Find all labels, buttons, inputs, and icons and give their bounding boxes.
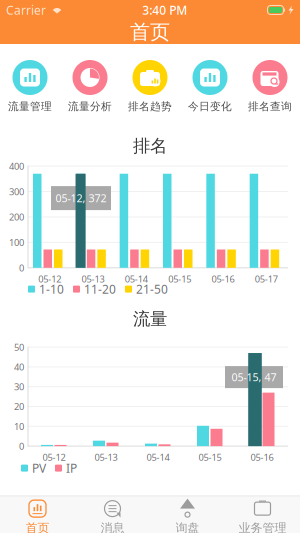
staticText: 今日变化 [188,100,232,113]
staticText: 20 [14,400,24,413]
staticText: 11-20 [84,281,116,297]
staticText: 05-14 [125,273,148,285]
staticText: IP [66,460,77,476]
staticText: 排名 [133,135,167,157]
staticText: 300 [9,185,24,198]
staticText: 排名查询 [248,100,292,113]
button[interactable]: 今日变化 [180,60,240,113]
staticText: 流量 [133,308,167,330]
staticText: 40 [14,361,24,373]
staticText: PV [32,460,46,476]
staticText: 0 [19,440,24,452]
staticText: 排名趋势 [128,100,172,113]
staticText: 首页 [130,20,170,44]
staticText: 400 [9,160,24,172]
staticText: 0 [19,262,24,274]
button[interactable]: 询盘 [150,499,225,533]
staticText: 05-13 [81,273,104,285]
staticText: 200 [9,211,24,223]
button[interactable]: 流量分析 [60,60,120,113]
staticText: 05-15, 47 [231,370,276,384]
button[interactable]: 消息 [75,499,150,533]
staticText: 10 [14,420,24,432]
staticText: 05-12, 372 [55,191,106,205]
button[interactable]: 流量管理 [0,60,60,113]
staticText: 30 [14,380,24,393]
staticText: 05-12 [38,273,61,285]
button[interactable]: 首页 [0,499,75,533]
staticText: 1-10 [39,281,64,297]
button[interactable]: 排名查询 [240,60,300,113]
staticText: 05-15 [198,451,221,463]
staticText: 05-14 [146,451,169,463]
staticText: 业务管理 [238,521,286,533]
staticText: 05-16 [211,273,234,285]
staticText: 流量管理 [8,100,52,113]
staticText: 首页 [25,521,49,533]
staticText: 05-12 [42,451,65,463]
staticText: 21-50 [136,281,168,297]
staticText: 3:40 PM [142,2,187,18]
staticText: 50 [14,341,24,353]
button[interactable]: 业务管理 [225,499,300,533]
staticText: 流量分析 [68,100,112,113]
staticText: 05-13 [94,451,117,463]
staticText: Carrier [6,2,46,18]
staticText: 05-17 [255,273,278,285]
staticText: 05-15 [168,273,191,285]
staticText: 100 [9,236,24,249]
button[interactable]: 排名趋势 [120,60,180,113]
staticText: 消息 [100,521,124,533]
staticText: 询盘 [175,521,199,533]
staticText: 05-16 [250,451,273,463]
